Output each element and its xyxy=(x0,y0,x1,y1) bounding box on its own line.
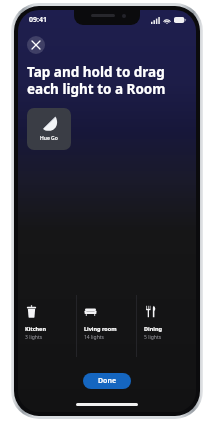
staticText: 14 lights xyxy=(84,334,104,341)
staticText: Kitchen xyxy=(25,325,46,332)
staticText: Done xyxy=(98,376,117,386)
staticText: 09:41 xyxy=(29,15,47,25)
button[interactable]: Kitchen xyxy=(18,295,76,341)
staticText: Hue Go xyxy=(40,135,58,142)
other: Kitchen xyxy=(25,305,38,318)
button[interactable]: Hue Go xyxy=(27,108,71,150)
staticText: Tap and hold to drag each light to a Roo… xyxy=(27,63,166,98)
staticText: Dining xyxy=(144,325,162,332)
button[interactable]: Close xyxy=(27,36,45,54)
button[interactable]: Done xyxy=(83,373,131,389)
other: Living room xyxy=(84,305,97,318)
other: Dining xyxy=(144,305,157,318)
button[interactable]: Living room xyxy=(77,295,136,341)
staticText: 5 lights xyxy=(144,334,162,341)
staticText: Living room xyxy=(84,325,117,332)
button[interactable]: Dining xyxy=(137,295,196,341)
staticText: 3 lights xyxy=(25,334,43,341)
